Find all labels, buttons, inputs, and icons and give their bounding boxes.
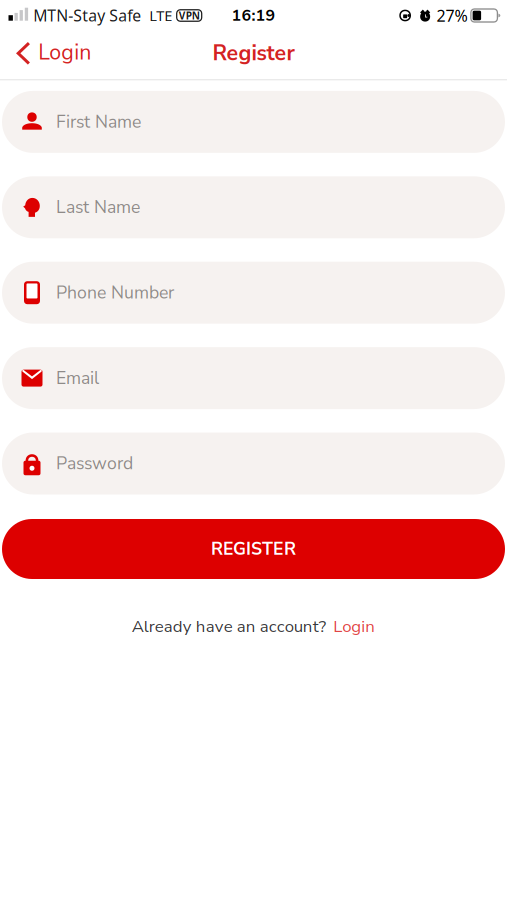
button[interactable]: Email (2, 347, 505, 409)
button[interactable]: Password (2, 432, 505, 494)
staticText: Login (333, 615, 375, 638)
staticText: MTN-Stay Safe (33, 5, 141, 26)
staticText: First Name (56, 110, 141, 134)
staticText: REGISTER (211, 537, 296, 561)
staticText: 27% (436, 5, 467, 26)
button[interactable]: Phone Number (2, 262, 505, 324)
button[interactable]: Login (333, 615, 375, 638)
button[interactable]: Last Name (2, 176, 505, 238)
staticText: Login (38, 38, 91, 67)
staticText: 16:19 (231, 5, 275, 26)
button[interactable]: REGISTER (2, 519, 505, 579)
staticText: VPN (179, 9, 200, 22)
staticText: LTE (149, 5, 172, 25)
staticText: Register (212, 39, 294, 68)
button[interactable]: First Name (2, 91, 505, 153)
staticText: Email (56, 366, 99, 390)
staticText: Phone Number (56, 281, 174, 305)
staticText: Password (56, 451, 133, 475)
button[interactable]: Login (0, 34, 103, 76)
staticText: Last Name (56, 195, 140, 219)
staticText: Already have an account? (132, 615, 326, 638)
